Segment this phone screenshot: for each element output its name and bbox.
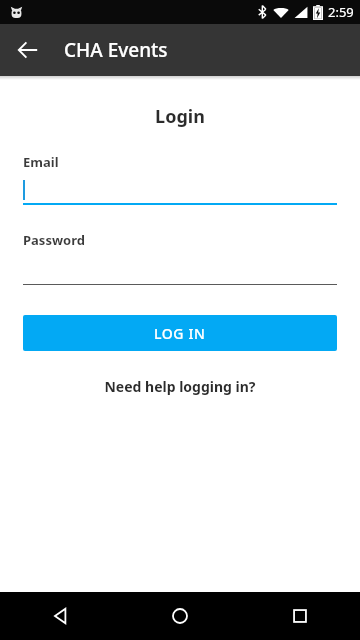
staticText: Login [23,104,337,129]
button[interactable] [23,171,337,205]
button[interactable]: Home [120,592,240,640]
button[interactable]: Need help logging in? [23,377,337,396]
staticText: CHA Events [64,37,168,63]
staticText: Email [23,153,59,171]
button[interactable]: Recents [240,592,360,640]
staticText: LOG IN [154,324,206,343]
button[interactable]: LOG IN [23,315,337,351]
button[interactable]: Back [0,592,120,640]
button[interactable]: Back [8,30,48,70]
button[interactable] [23,249,337,285]
staticText: Need help logging in? [104,377,256,396]
staticText: 2:59 [328,3,354,21]
staticText: Password [23,231,85,249]
